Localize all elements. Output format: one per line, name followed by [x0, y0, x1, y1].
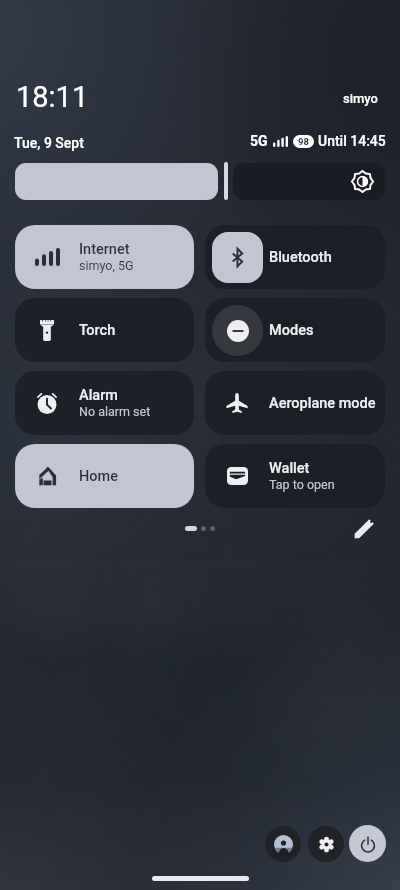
button[interactable]: Internet [15, 225, 194, 289]
staticText: 98 [298, 136, 309, 147]
button[interactable]: Edit tiles [349, 513, 379, 543]
button[interactable] [233, 163, 385, 200]
staticText: 5G [250, 133, 268, 149]
staticText: Bluetooth [269, 249, 332, 266]
staticText: Home [79, 468, 118, 485]
staticText: Tue, 9 Sept [14, 135, 84, 151]
staticText: simyo, 5G [79, 258, 134, 273]
button[interactable]: Aeroplane mode [205, 371, 385, 435]
button[interactable]: Wallet [205, 444, 385, 508]
staticText: 18:11 [16, 80, 89, 114]
staticText: Internet [79, 241, 130, 258]
staticText: Wallet [269, 460, 310, 477]
staticText: No alarm set [79, 404, 151, 419]
staticText: Torch [79, 322, 116, 339]
staticText: Until 14:45 [318, 133, 386, 149]
button[interactable]: Brightness [15, 163, 218, 200]
button[interactable]: User account [265, 826, 301, 862]
button[interactable]: Torch [15, 298, 194, 362]
button[interactable]: Settings [308, 826, 344, 862]
button[interactable]: Modes [205, 298, 385, 362]
staticText: Aeroplane mode [269, 395, 376, 412]
staticText: simyo [343, 91, 378, 106]
button[interactable]: Alarm [15, 371, 194, 435]
staticText: Tap to open [269, 477, 335, 492]
button[interactable]: Bluetooth [205, 225, 385, 289]
staticText: Alarm [79, 387, 118, 404]
staticText: Modes [269, 322, 314, 339]
button[interactable]: Power [349, 825, 386, 862]
button[interactable]: Home [15, 444, 194, 508]
